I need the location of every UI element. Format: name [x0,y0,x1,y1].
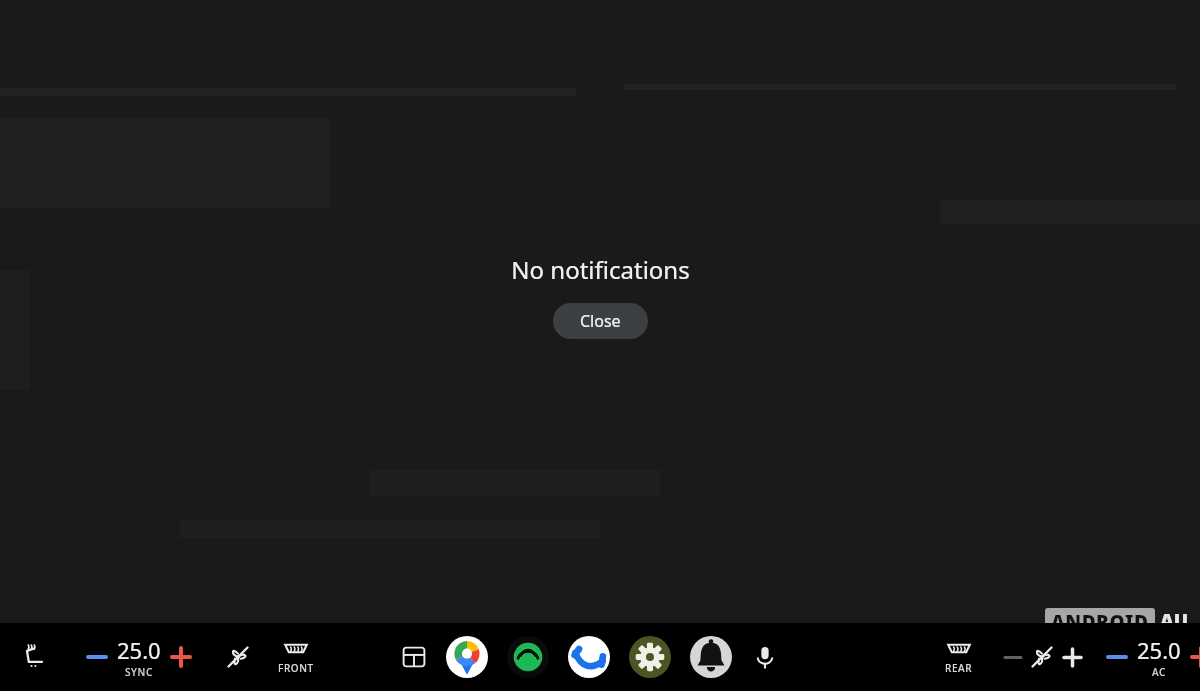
staticText: ANDROID [1051,609,1149,635]
button[interactable]: Spotify [507,636,549,678]
staticText: REAR [945,661,973,675]
button[interactable]: Close [553,303,648,339]
staticText: 25.0 [1137,635,1181,665]
staticText: AC [1152,665,1166,679]
button[interactable]: Increase fan [1056,641,1088,673]
button[interactable]: Phone [568,636,610,678]
button[interactable]: Notifications [690,636,732,678]
button[interactable]: Voice assistant [751,643,779,671]
staticText: Close [580,310,621,332]
button[interactable]: Rear fan off [1028,643,1056,671]
button[interactable]: Driver seat heater [18,642,48,672]
button[interactable]: Increase temperature [164,640,198,674]
button[interactable]: Split screen layout [401,644,427,670]
button[interactable]: Settings [629,636,671,678]
staticText: SYNC [125,665,153,679]
staticText: AU [1160,608,1189,634]
button[interactable]: Decrease temperature [80,640,114,674]
button[interactable]: Decrease fan [998,642,1028,672]
staticText: 25.0 [117,635,161,665]
staticText: No notifications [511,253,690,286]
button[interactable]: Fan off [224,643,252,671]
button[interactable]: FRONT [278,639,314,675]
button[interactable]: Decrease temperature [1100,640,1134,674]
button[interactable]: Google Maps [446,636,488,678]
button[interactable]: REAR [944,639,974,675]
button[interactable]: Increase temperature [1184,640,1200,674]
staticText: FRONT [278,661,314,675]
